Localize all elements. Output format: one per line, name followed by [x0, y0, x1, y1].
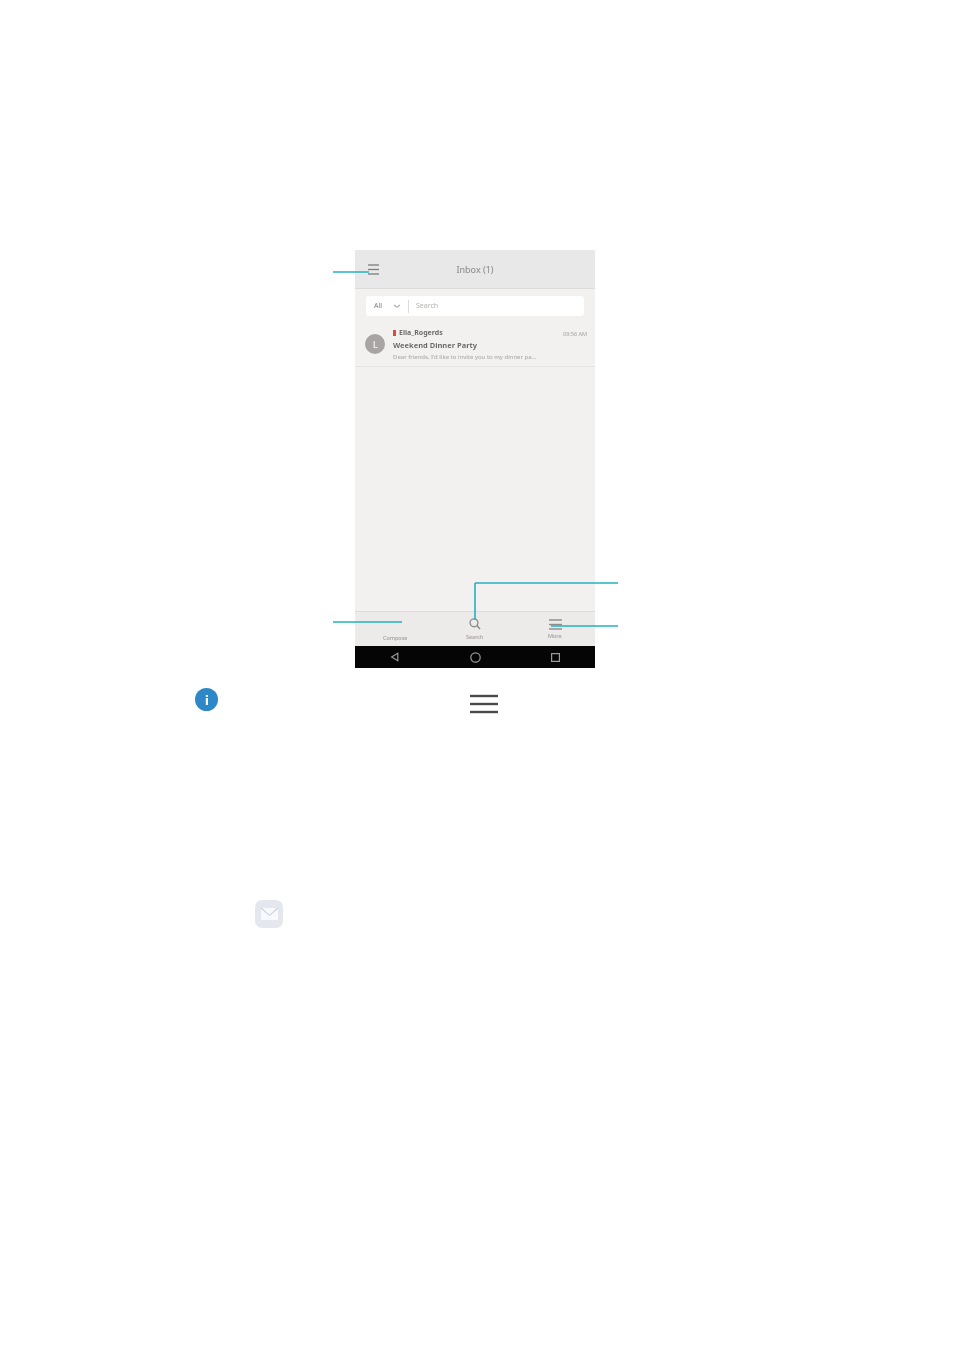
staticText: All	[374, 301, 383, 311]
staticText: Weekend Dinner Party	[393, 340, 478, 350]
staticText: More	[548, 632, 562, 639]
staticText: Dear friends, I'd like to invite you to …	[393, 353, 537, 361]
staticText: Ella_Rogerds	[399, 328, 443, 338]
button[interactable]: Home	[435, 646, 515, 668]
staticText: Compose	[383, 634, 408, 641]
staticText: i	[205, 691, 209, 709]
staticText: 09:56 AM	[563, 330, 587, 337]
button[interactable]: More	[515, 612, 595, 646]
button[interactable]: Back	[355, 646, 435, 668]
button[interactable]: Menu	[363, 259, 383, 279]
button[interactable]: All	[366, 296, 584, 316]
button[interactable]: Note	[195, 688, 218, 711]
staticText: L	[373, 338, 378, 350]
button[interactable]: Recents	[515, 646, 595, 668]
button[interactable]: Email	[255, 900, 283, 928]
staticText: Inbox (1)	[456, 263, 494, 275]
button[interactable]: Search	[435, 612, 515, 646]
staticText: Search	[416, 301, 439, 311]
button[interactable]: Compose	[355, 612, 435, 646]
button[interactable]: Menu icon	[468, 692, 500, 716]
staticText: Search	[466, 633, 484, 640]
button[interactable]: L	[355, 322, 595, 366]
